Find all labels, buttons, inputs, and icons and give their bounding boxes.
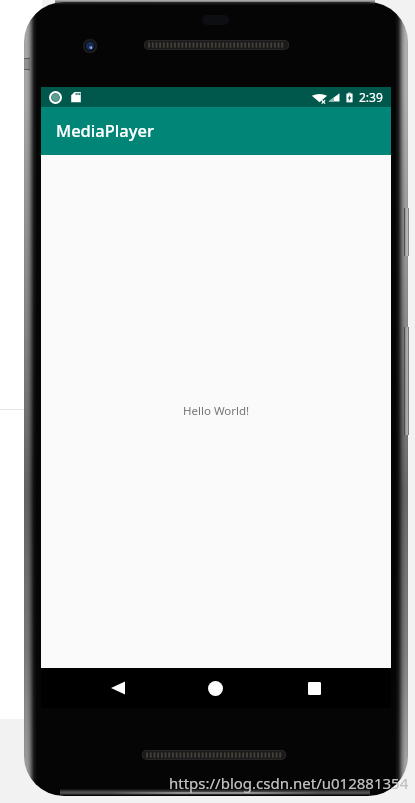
staticText: Hello World! xyxy=(183,403,250,419)
button[interactable]: Recent apps xyxy=(294,668,335,708)
button[interactable]: Back xyxy=(97,668,138,708)
button[interactable]: Home xyxy=(195,668,235,708)
button[interactable]: MediaPlayer xyxy=(41,107,391,155)
staticText: 2:39 xyxy=(359,89,383,105)
staticText: https://blog.csdn.net/u012881354 xyxy=(169,773,409,793)
staticText: MediaPlayer xyxy=(56,119,154,141)
